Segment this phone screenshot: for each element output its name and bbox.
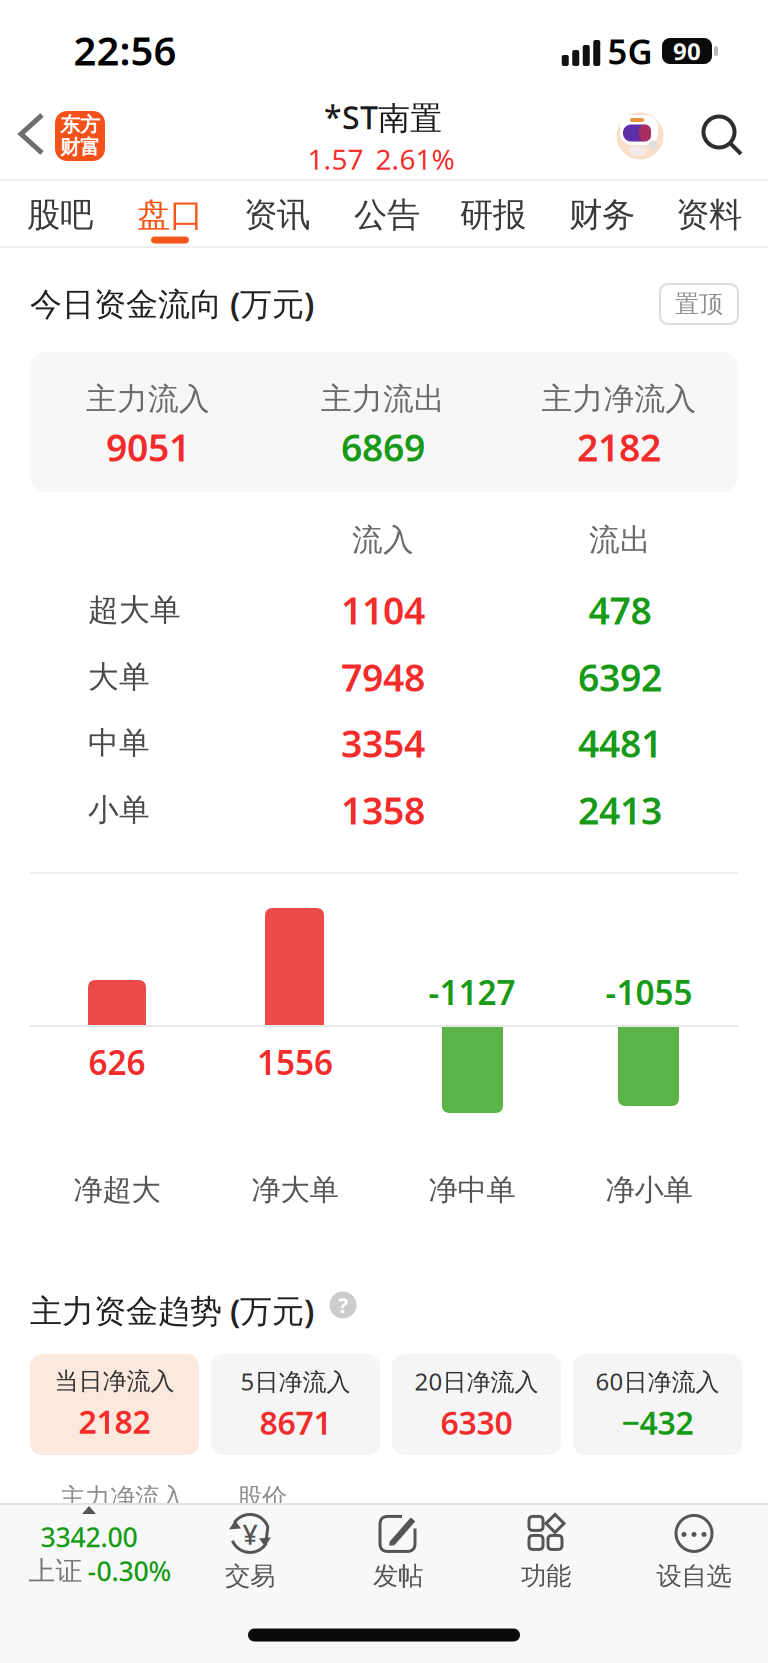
staticText: 1358 — [341, 785, 425, 835]
staticText: ? — [338, 1291, 348, 1319]
staticText: 净中单 — [428, 1172, 515, 1208]
staticText: 交易 — [225, 1560, 275, 1591]
staticText: 60日净流入 — [595, 1365, 719, 1397]
staticText: 主力资金趋势 (万元) — [30, 1289, 314, 1331]
button[interactable]: 发帖 — [328, 1506, 468, 1598]
staticText: 盘口 — [137, 194, 203, 235]
button[interactable]: 东方 — [55, 111, 105, 161]
button[interactable]: 20日净流入 — [392, 1354, 561, 1455]
staticText: 2.61% — [375, 140, 454, 178]
button[interactable] — [700, 114, 744, 158]
button[interactable]: 资讯 — [225, 184, 329, 246]
staticText: 6869 — [341, 422, 425, 472]
staticText: 8671 — [259, 1401, 331, 1444]
staticText: 478 — [588, 585, 651, 635]
staticText: 财富 — [60, 135, 100, 160]
button[interactable]: ? — [329, 1291, 356, 1319]
button[interactable]: 设自选 — [624, 1506, 764, 1598]
staticText: 4481 — [578, 718, 662, 768]
staticText: 5日净流入 — [240, 1365, 350, 1397]
button[interactable]: 当日净流入 — [30, 1354, 199, 1455]
staticText: 流入 — [352, 521, 414, 559]
staticText: 3354 — [341, 718, 425, 768]
staticText: 626 — [88, 1040, 145, 1084]
staticText: −432 — [621, 1401, 693, 1444]
staticText: -1127 — [428, 970, 515, 1014]
staticText: 发帖 — [373, 1560, 423, 1591]
staticText: 主力流入 — [86, 380, 210, 418]
staticText: 22:56 — [73, 23, 176, 76]
button[interactable]: 5日净流入 — [211, 1354, 380, 1455]
staticText: 流出 — [589, 521, 651, 559]
staticText: 大单 — [88, 658, 150, 696]
staticText: 1104 — [341, 585, 425, 635]
staticText: 9051 — [106, 422, 190, 472]
staticText: 功能 — [521, 1560, 571, 1591]
staticText: 中单 — [88, 724, 150, 762]
staticText: ¥ — [242, 1517, 257, 1552]
staticText: *ST南置 — [324, 96, 442, 138]
staticText: 7948 — [341, 652, 425, 702]
staticText: 2413 — [578, 785, 662, 835]
staticText: 公告 — [354, 194, 420, 235]
button[interactable]: 研报 — [441, 184, 545, 246]
button[interactable]: 公告 — [335, 184, 439, 246]
staticText: 6392 — [578, 652, 662, 702]
button[interactable]: 60日净流入 — [573, 1354, 742, 1455]
staticText: 6330 — [440, 1401, 512, 1444]
staticText: -1055 — [605, 970, 692, 1014]
staticText: 股价 — [237, 1482, 287, 1513]
staticText: 小单 — [88, 791, 150, 829]
button[interactable]: 功能 — [476, 1506, 616, 1598]
button[interactable] — [616, 112, 663, 159]
staticText: 当日净流入 — [54, 1366, 174, 1396]
staticText: 主力净流入 — [541, 380, 696, 418]
button[interactable]: 盘口 — [118, 184, 222, 246]
staticText: 资料 — [676, 194, 742, 235]
staticText: 净小单 — [605, 1172, 692, 1208]
staticText: 2182 — [577, 422, 661, 472]
staticText: 90 — [673, 35, 701, 67]
staticText: 净大单 — [251, 1172, 338, 1208]
staticText: 主力净流入 — [60, 1482, 185, 1513]
staticText: 净超大 — [73, 1172, 160, 1208]
staticText: 东方 — [60, 112, 100, 137]
staticText: 财务 — [569, 194, 635, 235]
button[interactable]: 股吧 — [8, 184, 112, 246]
staticText: 1.57 — [307, 140, 363, 178]
staticText: 20日净流入 — [414, 1365, 538, 1397]
button[interactable]: 3342.00 — [0, 1500, 198, 1596]
staticText: 设自选 — [656, 1560, 731, 1591]
staticText: 上证 — [28, 1555, 82, 1587]
staticText: 研报 — [460, 194, 526, 235]
button[interactable]: 置顶 — [660, 284, 738, 324]
staticText: 今日资金流向 (万元) — [30, 282, 314, 324]
staticText: 资讯 — [244, 194, 310, 235]
staticText: -0.30% — [87, 1553, 171, 1589]
staticText: 置顶 — [675, 289, 723, 319]
button[interactable]: ¥ — [180, 1506, 320, 1598]
staticText: 股吧 — [27, 194, 93, 235]
staticText: 2182 — [78, 1400, 150, 1442]
staticText: 5G — [607, 28, 652, 74]
staticText: 1556 — [257, 1040, 333, 1084]
staticText: 主力流出 — [321, 380, 445, 418]
button[interactable]: 财务 — [550, 184, 654, 246]
button[interactable]: 资料 — [657, 184, 761, 246]
button[interactable] — [12, 111, 52, 157]
staticText: 3342.00 — [40, 1519, 137, 1555]
staticText: 超大单 — [88, 591, 181, 629]
